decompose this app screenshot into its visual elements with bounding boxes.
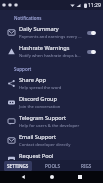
staticText: POOLS	[45, 163, 60, 169]
staticText: Payments and earnings every 24 hours	[19, 34, 82, 40]
button[interactable]: Back	[17, 171, 29, 183]
button[interactable]: Toggle Daily Summary	[85, 29, 98, 37]
staticText: Help for users & the developer	[19, 123, 80, 129]
staticText: Notify when hashrate drops by 50%	[19, 53, 82, 59]
button[interactable]: Hashrate Warnings	[0, 42, 103, 61]
staticText: Request Pool	[19, 152, 54, 160]
staticText: Support	[14, 66, 32, 72]
staticText: Daily Summary	[19, 25, 59, 33]
button[interactable]: RIGS	[69, 160, 103, 171]
button[interactable]: SETTINGS	[0, 160, 35, 171]
staticText: Notifications	[14, 15, 42, 21]
button[interactable]: Toggle Hashrate Warnings	[85, 48, 98, 56]
button[interactable]: Email Support	[0, 131, 103, 150]
staticText: Telegram Support	[19, 114, 67, 122]
staticText: SETTINGS	[7, 163, 29, 169]
button[interactable]: Request Pool	[0, 150, 103, 160]
button[interactable]: Share App	[0, 74, 103, 93]
staticText: Hashrate Warnings	[19, 44, 70, 52]
staticText: Join the conversation	[19, 104, 61, 110]
button[interactable]: Discord Group	[0, 93, 103, 112]
staticText: Contact developer directly	[19, 142, 71, 148]
button[interactable]: POOLS	[35, 160, 69, 171]
button[interactable]: Home	[46, 171, 58, 183]
staticText: 11:29	[88, 2, 101, 9]
staticText: Discord Group	[19, 95, 57, 103]
staticText: Share App	[19, 76, 46, 84]
staticText: Email Support	[19, 133, 56, 141]
button[interactable]: Daily Summary	[0, 23, 103, 42]
staticText: Help spread the word	[19, 85, 62, 91]
staticText: RIGS	[81, 163, 92, 169]
button[interactable]: Telegram Support	[0, 112, 103, 131]
button[interactable]: Recents	[74, 171, 86, 183]
